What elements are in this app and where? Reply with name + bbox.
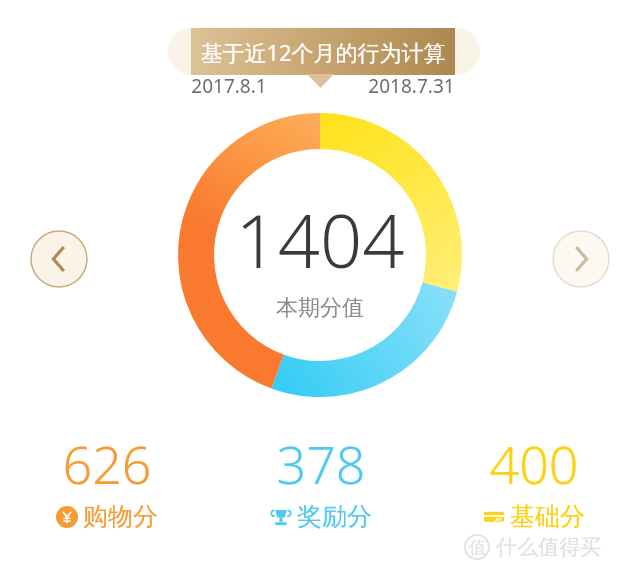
staticText: 2017.8.1 [191,73,267,99]
staticText: 购物分 [83,501,158,532]
staticText: 基于近12个月的行为计算 [200,37,446,67]
button[interactable]: Previous period [30,230,88,288]
button[interactable]: 378 [214,428,427,532]
button[interactable]: 626 [0,428,214,532]
staticText: 奖励分 [297,501,372,532]
button[interactable]: 基于近12个月的行为计算 [191,28,455,75]
staticText: 什么值得买 [496,534,601,560]
staticText: 2018.7.31 [368,73,455,99]
button[interactable]: Next period [552,230,610,288]
staticText: 值 [469,537,486,558]
staticText: 626 [62,428,152,499]
staticText: 400 [489,428,579,499]
staticText: 1404 [235,189,405,290]
button[interactable]: 400 [427,428,640,532]
staticText: 基础分 [510,501,585,532]
staticText: 本期分值 [276,294,364,322]
staticText: 378 [276,428,366,499]
